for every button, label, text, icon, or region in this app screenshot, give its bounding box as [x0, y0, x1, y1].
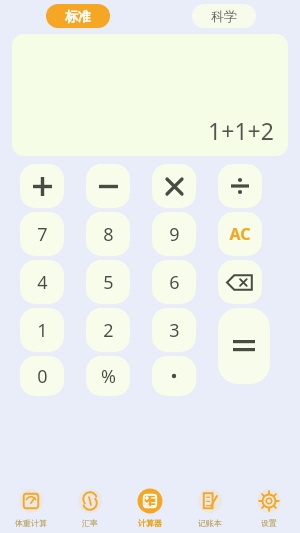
staticText: 2 [103, 318, 114, 343]
button[interactable]: Equals [218, 308, 270, 384]
button[interactable]: 记账本 [181, 483, 239, 531]
button[interactable]: All clear [218, 212, 262, 256]
button[interactable]: 7 [20, 212, 64, 256]
button[interactable]: 科学 [192, 4, 256, 28]
staticText: 1+1+2 [208, 115, 274, 146]
staticText: 9 [169, 222, 180, 247]
staticText: 5 [103, 270, 114, 295]
button[interactable]: Backspace [218, 260, 262, 304]
staticText: 7 [37, 222, 48, 247]
button[interactable]: 6 [152, 260, 196, 304]
staticText: 0 [37, 364, 48, 389]
staticText: 设置 [261, 518, 277, 528]
staticText: 记账本 [198, 518, 222, 528]
button[interactable]: 8 [86, 212, 130, 256]
button[interactable]: Divide [218, 164, 262, 208]
staticText: % [101, 364, 116, 389]
button[interactable]: 2 [86, 308, 130, 352]
staticText: 体重计算 [15, 518, 47, 528]
button[interactable]: 设置 [240, 483, 298, 531]
staticText: 汇率 [82, 518, 98, 528]
button[interactable]: 标准 [46, 4, 110, 28]
button[interactable]: 4 [20, 260, 64, 304]
button[interactable]: Plus [20, 164, 64, 208]
button[interactable]: 3 [152, 308, 196, 352]
button[interactable]: 体重计算 [2, 483, 60, 531]
button[interactable]: % [86, 356, 130, 396]
staticText: AC [229, 223, 251, 245]
button[interactable]: . [152, 356, 196, 396]
button[interactable]: 9 [152, 212, 196, 256]
button[interactable]: 0 [20, 356, 64, 396]
button[interactable]: 汇率 [61, 483, 119, 531]
button[interactable]: 1 [20, 308, 64, 352]
button[interactable]: Minus [86, 164, 130, 208]
staticText: 计算器 [138, 518, 162, 528]
staticText: 1 [37, 318, 48, 343]
button[interactable]: 5 [86, 260, 130, 304]
button[interactable]: 计算器 [121, 483, 179, 531]
staticText: 3 [169, 318, 180, 343]
staticText: 8 [103, 222, 114, 247]
staticText: 6 [169, 270, 180, 295]
button[interactable]: 1+1+2 [12, 34, 288, 156]
staticText: 标准 [65, 8, 91, 24]
button[interactable]: Multiply [152, 164, 196, 208]
staticText: 科学 [211, 8, 237, 24]
staticText: 4 [37, 270, 48, 295]
